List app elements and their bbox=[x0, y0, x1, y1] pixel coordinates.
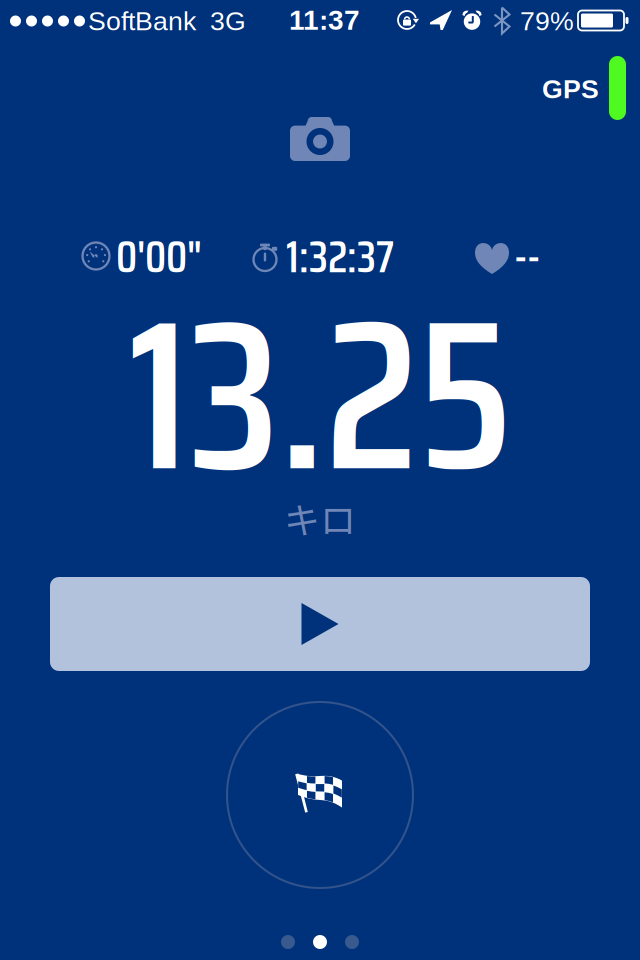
button[interactable]: Start activity bbox=[50, 577, 590, 671]
staticText: -- bbox=[514, 222, 540, 292]
staticText: SoftBank bbox=[88, 6, 196, 36]
staticText: 13.25 bbox=[128, 229, 512, 561]
button[interactable]: Camera bbox=[280, 114, 360, 164]
staticText: 79% bbox=[520, 6, 574, 36]
staticText: 1:32:37 bbox=[286, 222, 394, 292]
button[interactable]: Finish activity bbox=[227, 702, 413, 888]
staticText: キロ bbox=[284, 492, 356, 544]
staticText: 11:37 bbox=[289, 4, 360, 36]
staticText: 3G bbox=[210, 6, 246, 36]
staticText: GPS bbox=[542, 74, 599, 104]
staticText: 0'00" bbox=[116, 222, 202, 292]
